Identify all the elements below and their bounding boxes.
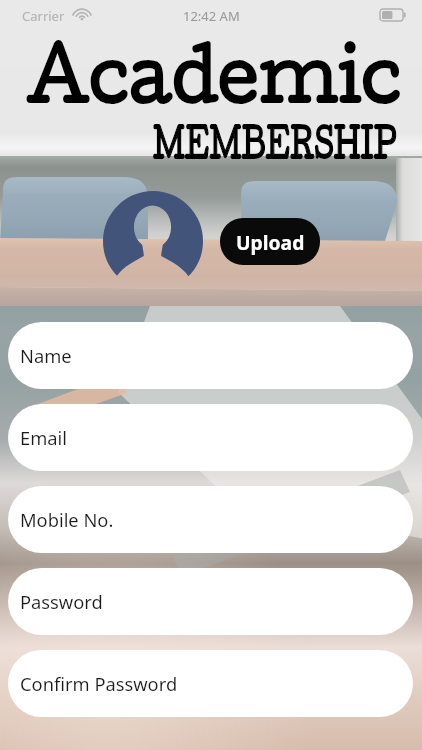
button[interactable]: Email (8, 404, 413, 471)
staticText: Password (20, 589, 103, 614)
staticText: Academic (27, 26, 401, 118)
staticText: Confirm Password (20, 671, 178, 696)
staticText: MEMBERSHIP (153, 116, 397, 167)
staticText: 12:42 AM (183, 7, 240, 25)
staticText: Mobile No. (20, 507, 114, 532)
button[interactable]: Profile picture (103, 191, 203, 291)
button[interactable]: Password (8, 568, 413, 635)
staticText: Carrier (22, 7, 65, 25)
button[interactable]: Upload (220, 218, 320, 265)
staticText: Email (20, 425, 67, 450)
staticText: Name (20, 343, 72, 368)
button[interactable]: Name (8, 322, 413, 389)
staticText: MEMBERSHIP (153, 116, 397, 167)
staticText: Upload (236, 229, 305, 255)
button[interactable]: Confirm Password (8, 650, 413, 717)
button[interactable]: Mobile No. (8, 486, 413, 553)
staticText: Academic (27, 26, 401, 118)
